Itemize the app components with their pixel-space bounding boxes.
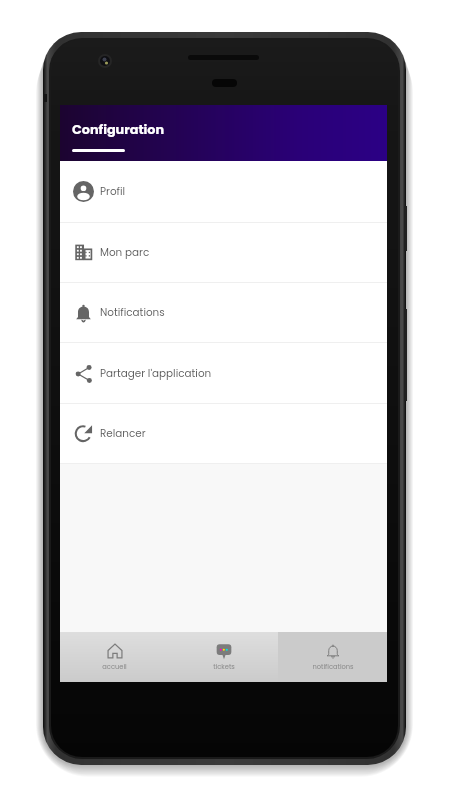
button[interactable]: Partager l'application bbox=[60, 343, 387, 403]
staticText: Mon parc bbox=[100, 245, 150, 260]
staticText: Relancer bbox=[100, 426, 146, 441]
button[interactable]: Notifications bbox=[60, 283, 387, 342]
button[interactable]: Profil bbox=[60, 161, 387, 222]
staticText: notifications bbox=[312, 662, 354, 671]
button[interactable]: accueil bbox=[60, 632, 169, 682]
button[interactable]: Mon parc bbox=[60, 223, 387, 282]
staticText: Configuration bbox=[72, 121, 165, 139]
button[interactable]: tickets bbox=[169, 632, 278, 682]
button[interactable]: Relancer bbox=[60, 404, 387, 463]
staticText: tickets bbox=[213, 662, 235, 671]
staticText: Notifications bbox=[100, 305, 165, 320]
button[interactable]: notifications bbox=[278, 632, 387, 682]
staticText: accueil bbox=[102, 662, 127, 671]
staticText: Profil bbox=[100, 184, 126, 199]
staticText: Partager l'application bbox=[100, 366, 212, 381]
